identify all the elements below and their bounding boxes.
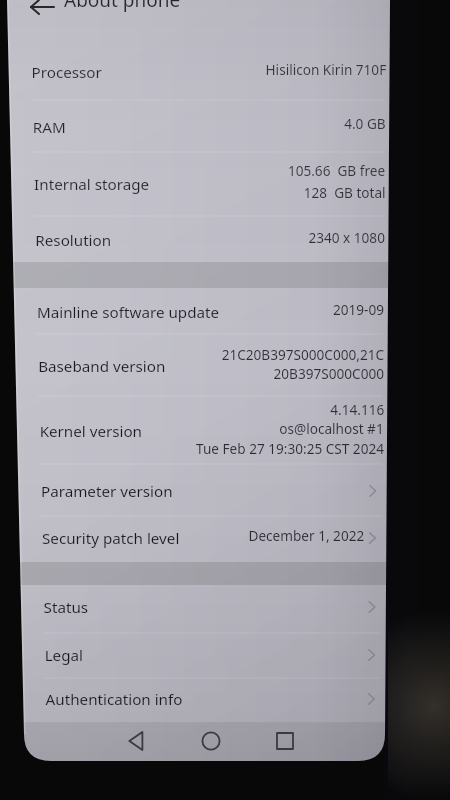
button[interactable] (12, 216, 389, 262)
button[interactable] (20, 585, 386, 633)
button[interactable]: Back (20, 0, 68, 24)
button[interactable] (13, 288, 388, 334)
button[interactable] (22, 678, 385, 722)
button[interactable]: Recent apps (256, 724, 316, 760)
button[interactable] (17, 464, 387, 516)
button[interactable] (16, 396, 388, 464)
button[interactable] (19, 516, 387, 562)
button[interactable] (9, 100, 389, 152)
button[interactable]: Home (182, 724, 242, 760)
button[interactable] (14, 334, 387, 396)
button[interactable]: Back (108, 724, 168, 760)
button[interactable] (8, 45, 390, 100)
button[interactable] (10, 152, 389, 216)
button[interactable] (21, 633, 386, 678)
